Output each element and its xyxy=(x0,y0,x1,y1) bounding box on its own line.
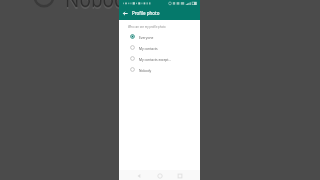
staticText: Profile photo xyxy=(132,10,160,16)
staticText: My contacts except... xyxy=(139,57,172,61)
button[interactable]: Everyone xyxy=(119,31,200,42)
button[interactable]: Back xyxy=(134,170,144,180)
button[interactable]: Nobody xyxy=(119,64,200,75)
staticText: My contacts xyxy=(139,46,158,50)
button[interactable]: Home xyxy=(155,170,165,180)
button[interactable]: My contacts except... xyxy=(119,53,200,64)
staticText: Nobody xyxy=(139,68,152,72)
staticText: Everyone xyxy=(139,35,154,39)
button[interactable]: Back xyxy=(119,6,131,20)
button[interactable]: My contacts xyxy=(119,42,200,53)
staticText: Who can see my profile photo xyxy=(128,25,166,29)
staticText: Nobody xyxy=(65,0,136,15)
staticText: Nobody xyxy=(65,0,136,13)
button[interactable]: Recent apps xyxy=(175,170,185,180)
